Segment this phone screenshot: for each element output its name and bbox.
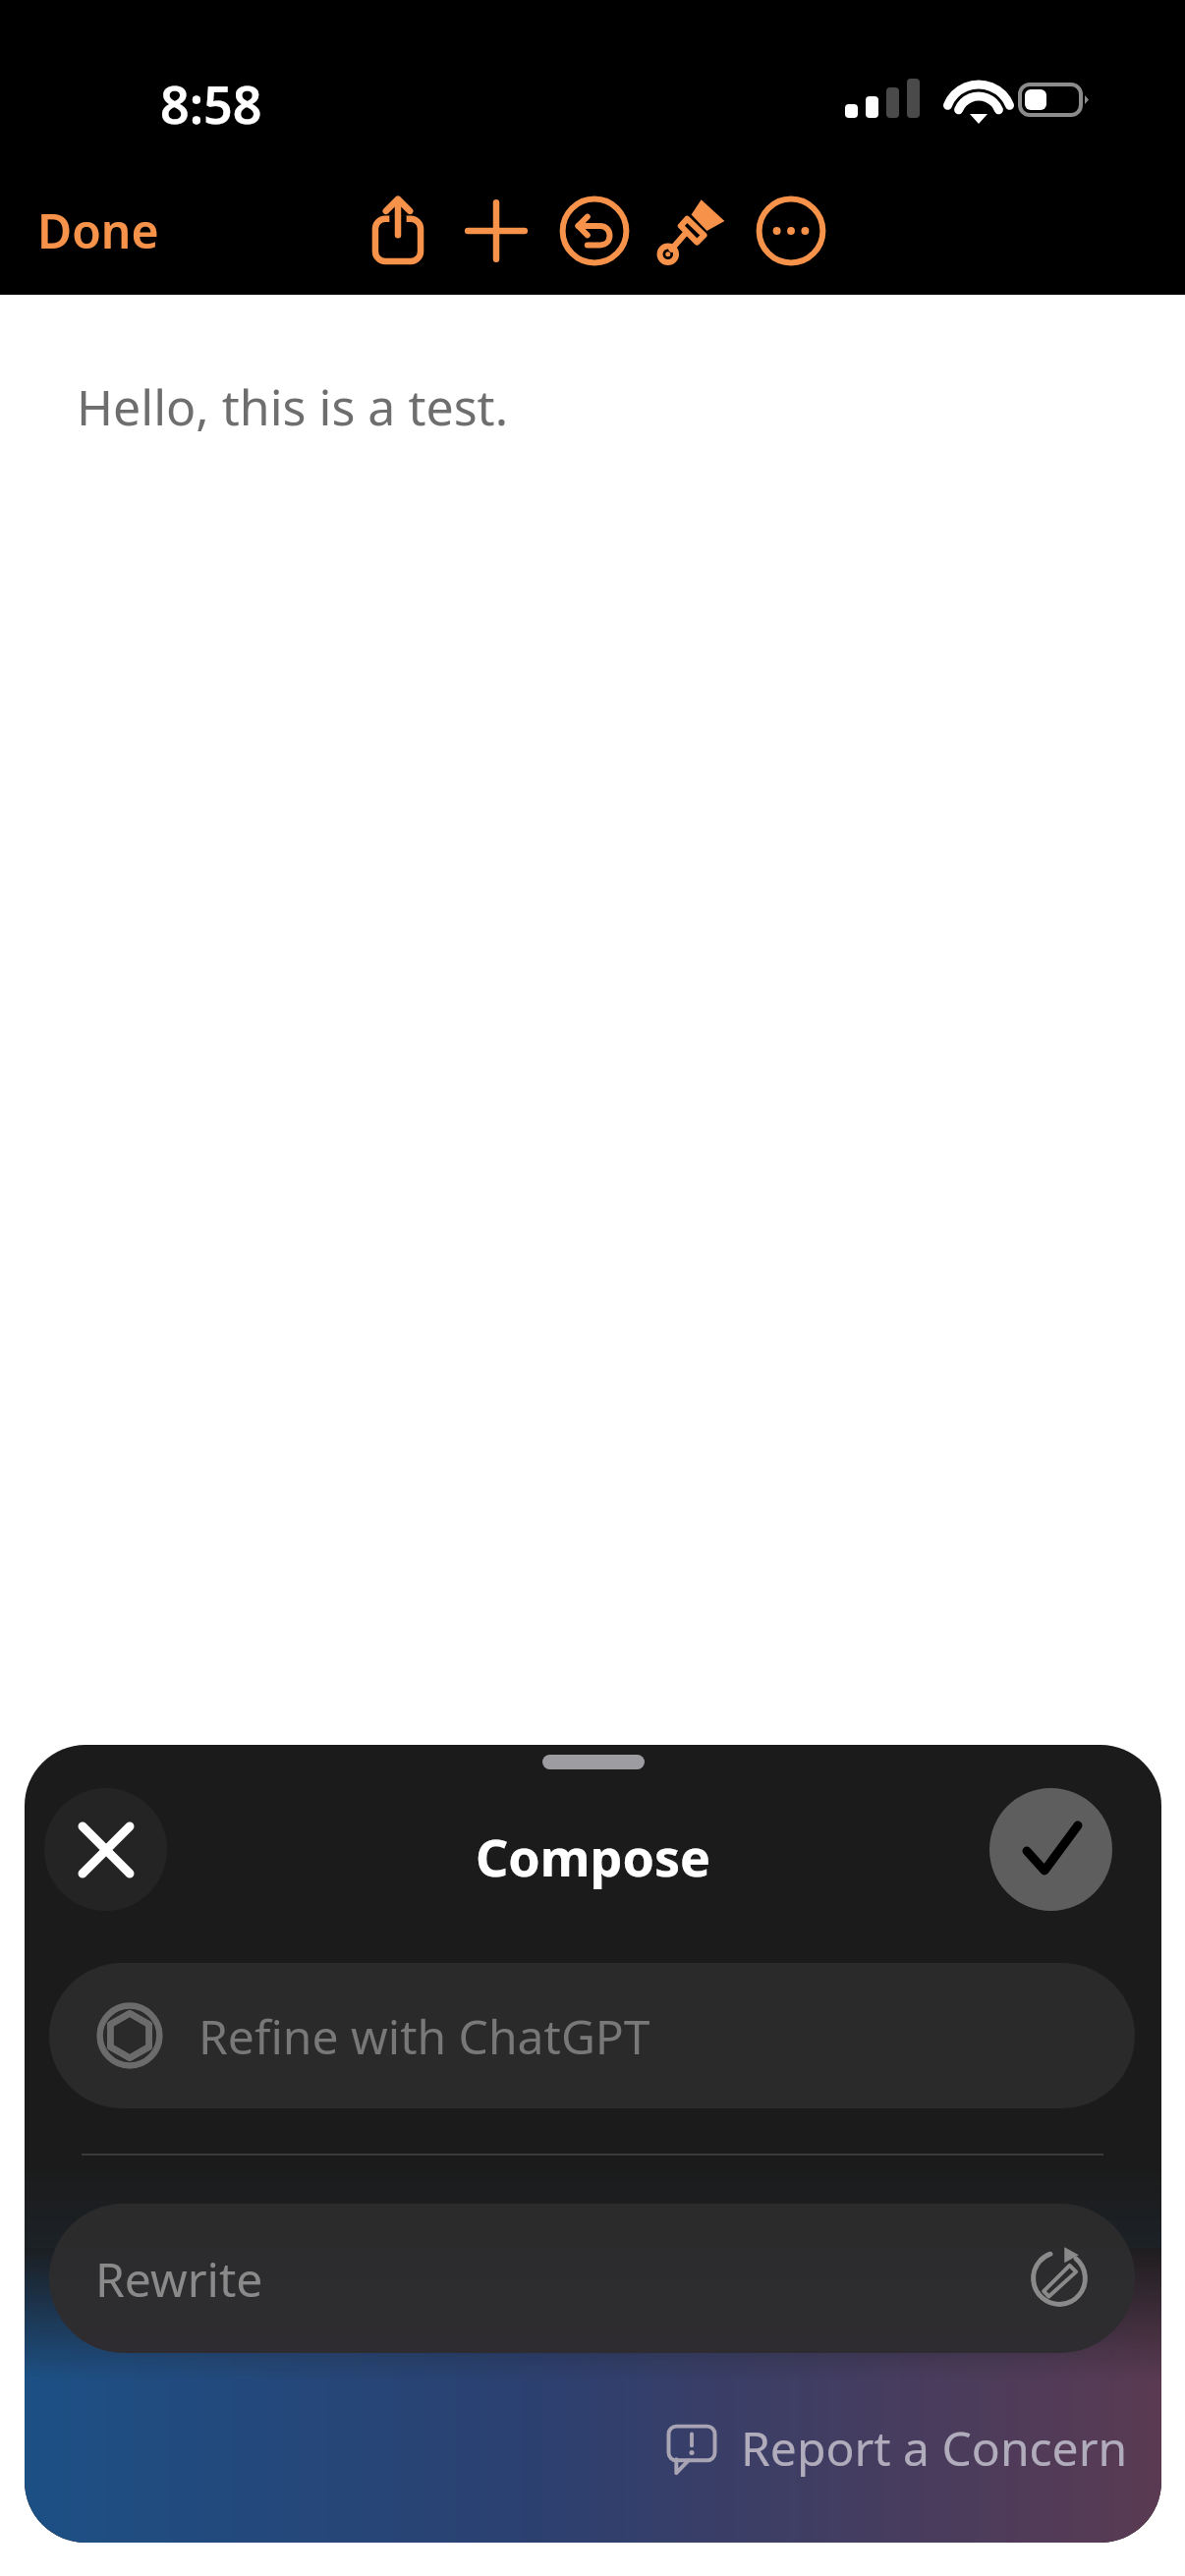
staticText: Compose [25, 1821, 1161, 1891]
button[interactable]: Markup [639, 177, 747, 285]
button[interactable]: Add [442, 177, 550, 285]
staticText: Report a Concern [741, 2416, 1128, 2480]
staticText: 8:58 [160, 69, 262, 139]
button[interactable]: Rewrite [49, 2204, 1135, 2353]
staticText: Refine with ChatGPT [198, 2004, 650, 2068]
button[interactable]: More options [737, 177, 845, 285]
button[interactable]: Report a Concern [656, 2410, 1136, 2486]
button[interactable]: Share [344, 177, 452, 285]
button[interactable]: Close [44, 1788, 167, 1911]
staticText: Done [37, 198, 159, 262]
button[interactable]: Done [29, 193, 167, 268]
button[interactable]: Refine with ChatGPT [49, 1963, 1135, 2108]
button[interactable]: Undo [540, 177, 649, 285]
staticText: Rewrite [95, 2247, 263, 2311]
staticText: Hello, this is a test. [77, 373, 509, 440]
button[interactable]: Confirm [989, 1788, 1112, 1911]
